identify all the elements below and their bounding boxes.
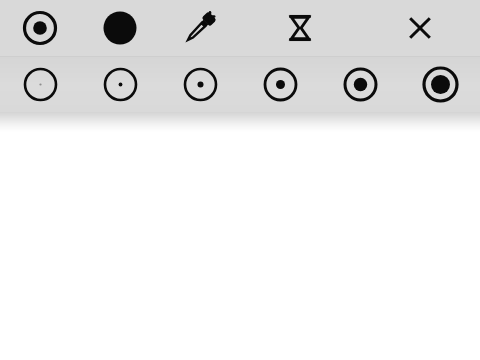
button[interactable]: Brush size 1 [13,57,68,112]
button[interactable]: Eyedropper [172,0,228,56]
button[interactable]: Brush size 3 [173,57,228,112]
button[interactable]: Color [92,0,148,56]
button[interactable]: Brush size 6 [413,57,468,112]
button[interactable]: Brush size 5 [333,57,388,112]
button[interactable]: History [272,0,328,56]
button[interactable]: Close [392,0,448,56]
button[interactable]: Brush size 4 [253,57,308,112]
button[interactable]: Brush [12,0,68,56]
button[interactable]: Brush size 2 [93,57,148,112]
